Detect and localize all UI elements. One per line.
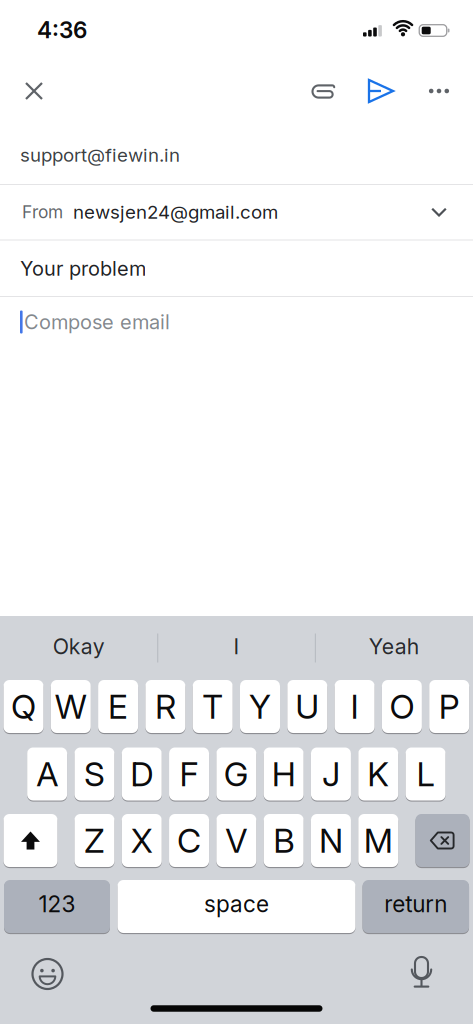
staticText: A: [36, 754, 58, 794]
staticText: K: [367, 754, 389, 794]
staticText: Okay: [53, 634, 105, 659]
staticText: return: [384, 891, 447, 917]
button[interactable]: S: [74, 747, 114, 800]
button[interactable]: W: [51, 680, 91, 733]
button[interactable]: M: [358, 814, 398, 867]
button[interactable]: X: [122, 814, 162, 867]
button[interactable]: H: [264, 747, 304, 800]
button[interactable]: Z: [74, 814, 114, 867]
button[interactable]: B: [264, 814, 304, 867]
staticText: H: [272, 754, 296, 794]
button[interactable]: A: [27, 747, 67, 800]
staticText: N: [319, 821, 343, 860]
button[interactable]: Space: [117, 880, 355, 933]
button[interactable]: V: [216, 814, 256, 867]
button[interactable]: I: [335, 680, 375, 733]
staticText: O: [389, 687, 414, 726]
button[interactable]: E: [98, 680, 138, 733]
button[interactable]: Yeah: [316, 617, 472, 679]
button[interactable]: Numbers: [4, 880, 110, 933]
staticText: D: [130, 754, 153, 794]
button[interactable]: F: [169, 747, 209, 800]
staticText: C: [177, 821, 201, 860]
staticText: Q: [11, 687, 36, 726]
button[interactable]: D: [122, 747, 162, 800]
button[interactable]: Okay: [1, 617, 157, 679]
button[interactable]: Your problem: [0, 241, 473, 296]
button[interactable]: support@fiewin.in: [0, 128, 473, 182]
staticText: R: [155, 687, 176, 726]
staticText: U: [295, 687, 319, 726]
staticText: L: [416, 754, 434, 794]
button[interactable]: Close: [12, 69, 56, 113]
staticText: newsjen24@gmail.com: [73, 201, 278, 223]
button[interactable]: J: [311, 747, 351, 800]
staticText: 123: [38, 891, 75, 917]
staticText: X: [131, 821, 153, 860]
button[interactable]: O: [382, 680, 422, 733]
staticText: P: [439, 687, 460, 726]
button[interactable]: Delete: [415, 814, 469, 867]
staticText: J: [322, 754, 340, 794]
staticText: E: [108, 687, 128, 726]
button[interactable]: From: [0, 184, 473, 239]
staticText: W: [55, 687, 87, 726]
staticText: F: [179, 754, 198, 794]
staticText: Z: [84, 821, 105, 860]
staticText: Yeah: [369, 634, 420, 659]
button[interactable]: G: [216, 747, 256, 800]
staticText: G: [224, 754, 249, 794]
staticText: M: [364, 821, 393, 860]
button[interactable]: R: [145, 680, 185, 733]
staticText: I: [233, 634, 239, 659]
button[interactable]: C: [169, 814, 209, 867]
button[interactable]: U: [287, 680, 327, 733]
staticText: S: [84, 754, 105, 794]
button[interactable]: T: [193, 680, 233, 733]
staticText: space: [204, 891, 269, 917]
button[interactable]: Emoji: [25, 952, 69, 996]
button[interactable]: N: [311, 814, 351, 867]
button[interactable]: Shift: [3, 814, 57, 867]
staticText: I: [351, 687, 359, 726]
button[interactable]: Dictate: [399, 950, 443, 994]
button[interactable]: P: [429, 680, 469, 733]
button[interactable]: Compose email: [0, 296, 473, 348]
staticText: Your problem: [20, 257, 146, 280]
staticText: Compose email: [24, 310, 170, 334]
button[interactable]: Attach file: [301, 69, 345, 113]
staticText: T: [202, 687, 223, 726]
button[interactable]: K: [358, 747, 398, 800]
button[interactable]: I: [158, 617, 314, 679]
staticText: B: [273, 821, 294, 860]
button[interactable]: Q: [3, 680, 43, 733]
staticText: Y: [249, 687, 271, 726]
button[interactable]: More options: [417, 69, 461, 113]
button[interactable]: Return: [363, 880, 469, 933]
staticText: 4:36: [37, 17, 87, 43]
staticText: From: [22, 202, 63, 222]
staticText: support@fiewin.in: [20, 144, 180, 166]
staticText: V: [225, 821, 247, 860]
button[interactable]: L: [405, 747, 445, 800]
button[interactable]: Send: [358, 69, 402, 113]
button[interactable]: Y: [240, 680, 280, 733]
